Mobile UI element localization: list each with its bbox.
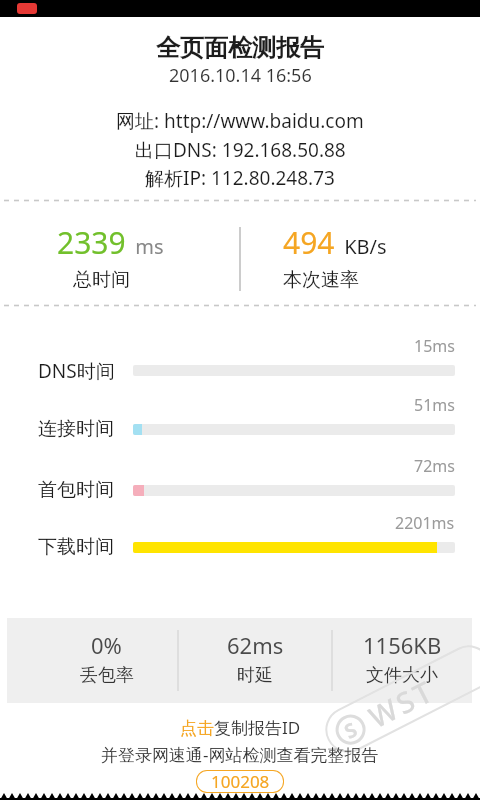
staticText: 62ms <box>227 630 284 660</box>
staticText: 本次速率 <box>283 268 359 292</box>
staticText: 494 <box>283 222 335 263</box>
staticText: 100208 <box>211 770 270 793</box>
staticText: 下载时间 <box>38 535 114 559</box>
staticText: 网址: http://www.baidu.com <box>116 108 364 134</box>
button[interactable]: 2339 <box>57 222 164 263</box>
staticText: 2201ms <box>395 512 455 534</box>
staticText: 15ms <box>414 335 455 357</box>
button[interactable] <box>133 485 455 496</box>
staticText: 连接时间 <box>38 417 114 441</box>
staticText: 51ms <box>414 394 455 416</box>
staticText: DNS时间 <box>38 358 115 384</box>
staticText: 2016.10.14 16:56 <box>169 63 312 88</box>
button[interactable]: 点击复制报告ID <box>180 716 301 739</box>
staticText: 文件大小 <box>366 664 438 687</box>
staticText: ms <box>130 233 164 260</box>
staticText: 出口DNS: 192.168.50.88 <box>135 137 346 163</box>
staticText: 首包时间 <box>38 478 114 502</box>
button[interactable] <box>133 542 455 553</box>
staticText: 并登录网速通-网站检测查看完整报告 <box>101 743 379 766</box>
staticText: 全页面检测报告 <box>156 33 324 63</box>
button[interactable]: 494 <box>283 222 387 263</box>
staticText: 时延 <box>237 664 273 687</box>
staticText: 0% <box>91 630 122 660</box>
button[interactable] <box>133 424 455 435</box>
staticText: 总时间 <box>73 268 130 292</box>
staticText: S <box>339 715 362 745</box>
button[interactable]: 62ms <box>178 618 332 703</box>
staticText: 丢包率 <box>80 664 134 687</box>
staticText: 1156KB <box>363 630 442 660</box>
button[interactable]: 100208 <box>196 770 284 793</box>
staticText: 解析IP: 112.80.248.73 <box>145 165 335 191</box>
staticText: 72ms <box>414 455 455 477</box>
staticText: WST <box>362 670 441 736</box>
staticText: KB/s <box>339 233 387 260</box>
staticText: 2339 <box>57 222 126 263</box>
button[interactable]: 0% <box>21 618 192 703</box>
button[interactable]: 1156KB <box>332 618 472 703</box>
